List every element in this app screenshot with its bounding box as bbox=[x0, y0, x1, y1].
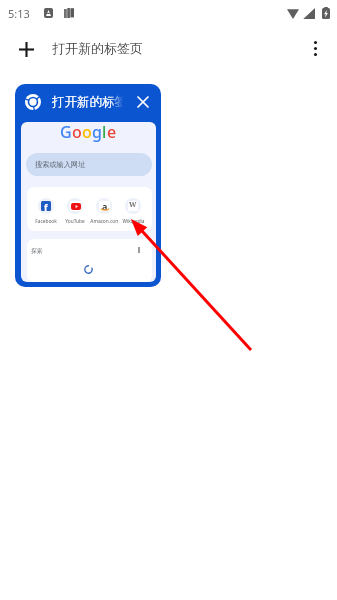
staticText: YouTube bbox=[65, 218, 85, 225]
staticText: 5:13 bbox=[8, 6, 30, 21]
button[interactable]: Close tab bbox=[134, 93, 152, 111]
staticText: W bbox=[129, 200, 137, 210]
staticText: o bbox=[82, 122, 92, 143]
button[interactable]: 搜索或输入网址 bbox=[26, 153, 152, 176]
button[interactable]: a bbox=[90, 191, 118, 229]
button[interactable]: W bbox=[119, 191, 147, 229]
staticText: e bbox=[107, 122, 117, 143]
button[interactable]: YouTube bbox=[61, 191, 89, 229]
staticText: a bbox=[102, 200, 108, 210]
button[interactable]: More options bbox=[299, 32, 331, 64]
staticText: Wikipedia bbox=[122, 218, 145, 225]
staticText: 打开新的标签页 bbox=[52, 94, 123, 110]
staticText: 搜索或输入网址 bbox=[35, 160, 86, 169]
button[interactable]: f bbox=[32, 191, 60, 229]
staticText: f bbox=[44, 201, 48, 211]
button[interactable]: Explore options bbox=[132, 243, 146, 257]
button[interactable]: 打开新的标签页 bbox=[15, 84, 161, 287]
staticText: Amazon.com bbox=[90, 218, 118, 225]
staticText: l bbox=[102, 122, 107, 143]
staticText: g bbox=[92, 122, 102, 143]
staticText: o bbox=[72, 122, 82, 143]
staticText: 打开新的标签页 bbox=[52, 40, 143, 56]
button[interactable]: New tab bbox=[10, 33, 42, 65]
staticText: Facebook bbox=[35, 218, 57, 225]
staticText: G bbox=[60, 122, 72, 143]
staticText: 探索 bbox=[31, 247, 43, 254]
